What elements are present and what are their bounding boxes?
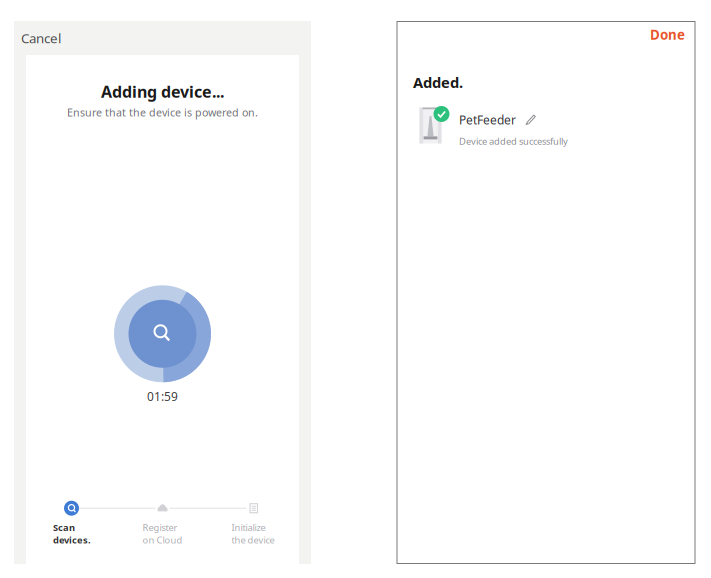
- button[interactable]: Rename device: [524, 113, 537, 126]
- staticText: Register on Cloud: [142, 521, 182, 546]
- button[interactable]: Done: [640, 21, 695, 52]
- staticText: Device added successfully: [459, 135, 568, 147]
- staticText: Initialize the device: [231, 521, 274, 546]
- staticText: Added.: [413, 72, 463, 92]
- staticText: Ensure that the device is powered on.: [67, 105, 258, 119]
- button[interactable]: Cancel: [14, 20, 71, 56]
- staticText: Done: [650, 26, 685, 43]
- staticText: Cancel: [21, 29, 61, 47]
- staticText: Adding device...: [101, 81, 224, 102]
- staticText: Scan devices.: [53, 521, 91, 546]
- staticText: 01:59: [147, 388, 178, 404]
- staticText: PetFeeder: [459, 112, 516, 128]
